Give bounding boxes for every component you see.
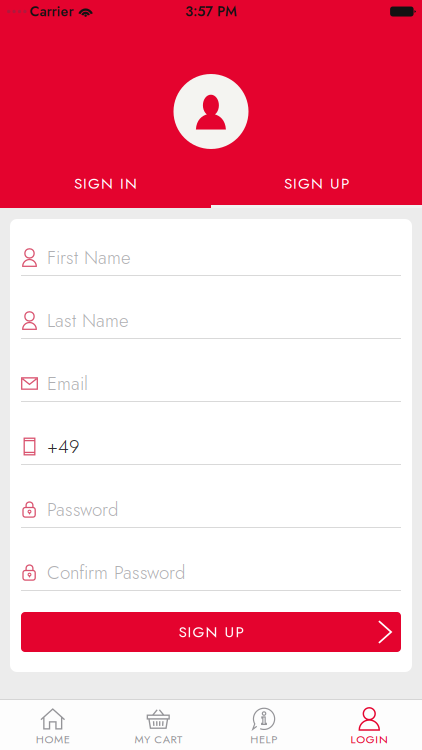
staticText: Confirm Password xyxy=(47,559,185,586)
staticText: HELP xyxy=(250,731,277,747)
button[interactable]: MY CART xyxy=(105,700,211,750)
staticText: Email xyxy=(47,370,88,397)
button[interactable]: SIGN IN xyxy=(0,162,211,208)
button[interactable]: SIGN UP xyxy=(211,162,422,208)
staticText: Last Name xyxy=(47,307,129,334)
staticText: LOGIN xyxy=(351,731,388,747)
staticText: MY CART xyxy=(134,731,182,747)
staticText: SIGN UP xyxy=(284,172,349,195)
staticText: SIGN IN xyxy=(74,172,137,195)
staticText: SIGN UP xyxy=(178,621,243,643)
staticText: 3:57 PM xyxy=(185,1,237,22)
button[interactable]: HELP xyxy=(211,700,316,750)
staticText: HOME xyxy=(36,731,70,747)
button[interactable]: LOGIN xyxy=(316,700,422,750)
button[interactable]: HOME xyxy=(0,700,105,750)
staticText: Password xyxy=(47,496,118,523)
staticText: +49 xyxy=(47,433,79,460)
staticText: Carrier xyxy=(30,1,74,22)
staticText: First Name xyxy=(47,244,131,271)
button[interactable]: SIGN UP xyxy=(21,612,401,652)
